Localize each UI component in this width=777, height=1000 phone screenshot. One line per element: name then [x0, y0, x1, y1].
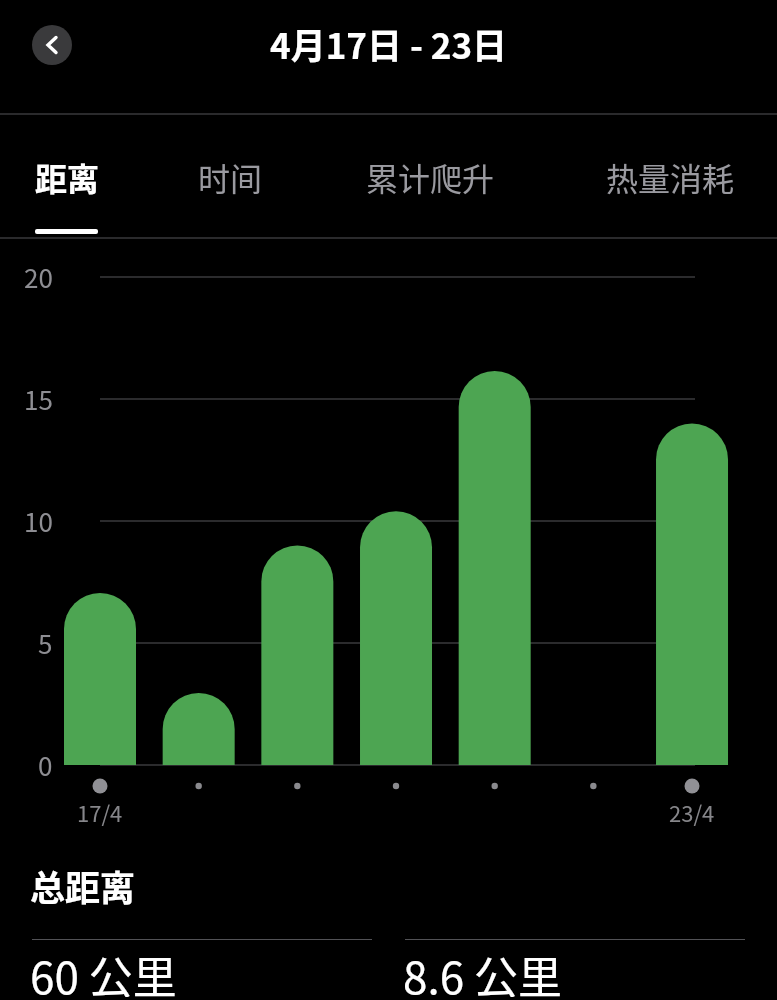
button[interactable]: 60 公里 — [30, 943, 370, 997]
staticText: 15 — [24, 380, 53, 418]
staticText: 20 — [24, 258, 53, 296]
staticText: 10 — [24, 502, 53, 540]
button[interactable]: 时间 — [198, 144, 263, 210]
staticText: 4月17日 - 23日 — [270, 18, 508, 69]
button[interactable] — [32, 25, 72, 65]
button[interactable]: 距离 — [35, 144, 100, 210]
button[interactable]: 热量消耗 — [606, 144, 735, 210]
staticText: 0 — [38, 746, 53, 784]
button[interactable]: 8.6 公里 — [403, 943, 743, 997]
staticText: 23/4 — [669, 796, 715, 828]
staticText: 5 — [38, 624, 53, 662]
staticText: 17/4 — [77, 796, 123, 828]
staticText: 总距离 — [30, 860, 136, 911]
button[interactable]: 累计爬升 — [366, 144, 495, 210]
staticText: 8.6 公里 — [403, 943, 562, 997]
staticText: 热量消耗 — [606, 154, 735, 200]
staticText: 累计爬升 — [366, 154, 495, 200]
staticText: 距离 — [35, 154, 100, 200]
staticText: 60 公里 — [30, 943, 177, 997]
staticText: 时间 — [198, 154, 263, 200]
